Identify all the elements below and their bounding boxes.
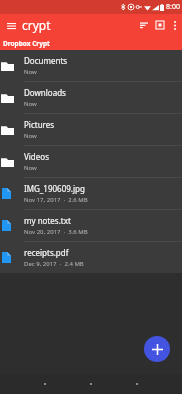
staticText: Videos — [24, 151, 49, 162]
staticText: Nov 20, 2017 · 3.6 MB — [24, 228, 88, 236]
staticText: Nov 17, 2017 · 2.6 MB — [24, 196, 88, 204]
staticText: receipts.pdf — [24, 247, 69, 258]
staticText: Documents — [24, 55, 68, 66]
staticText: Downloads — [24, 87, 66, 98]
staticText: Pictures — [24, 119, 55, 130]
staticText: my notes.txt — [24, 215, 71, 226]
staticText: Now — [24, 68, 37, 76]
button[interactable]: Change view — [152, 17, 168, 33]
button[interactable]: Videos — [0, 146, 182, 177]
staticText: Now — [24, 100, 37, 108]
button[interactable]: Documents — [0, 50, 182, 81]
button[interactable]: Open navigation drawer — [4, 18, 18, 32]
button[interactable]: IMG_190609.jpg — [0, 178, 182, 209]
button[interactable]: Pictures — [0, 114, 182, 145]
staticText: Dropbox Crypt — [3, 39, 50, 48]
button[interactable]: my notes.txt — [0, 210, 182, 241]
button[interactable]: Add — [144, 336, 170, 362]
staticText: crypt — [22, 17, 51, 33]
staticText: 8:00 — [166, 2, 180, 12]
staticText: IMG_190609.jpg — [24, 183, 85, 194]
staticText: Now — [24, 132, 37, 140]
button[interactable]: More options — [168, 19, 181, 32]
button[interactable]: Downloads — [0, 82, 182, 113]
staticText: Now — [24, 164, 37, 172]
staticText: Dec 9, 2017 · 2.4 MB — [24, 260, 84, 268]
button[interactable]: receipts.pdf — [0, 242, 182, 273]
button[interactable]: Sort — [136, 17, 152, 33]
button[interactable]: Dropbox Crypt — [0, 36, 182, 50]
